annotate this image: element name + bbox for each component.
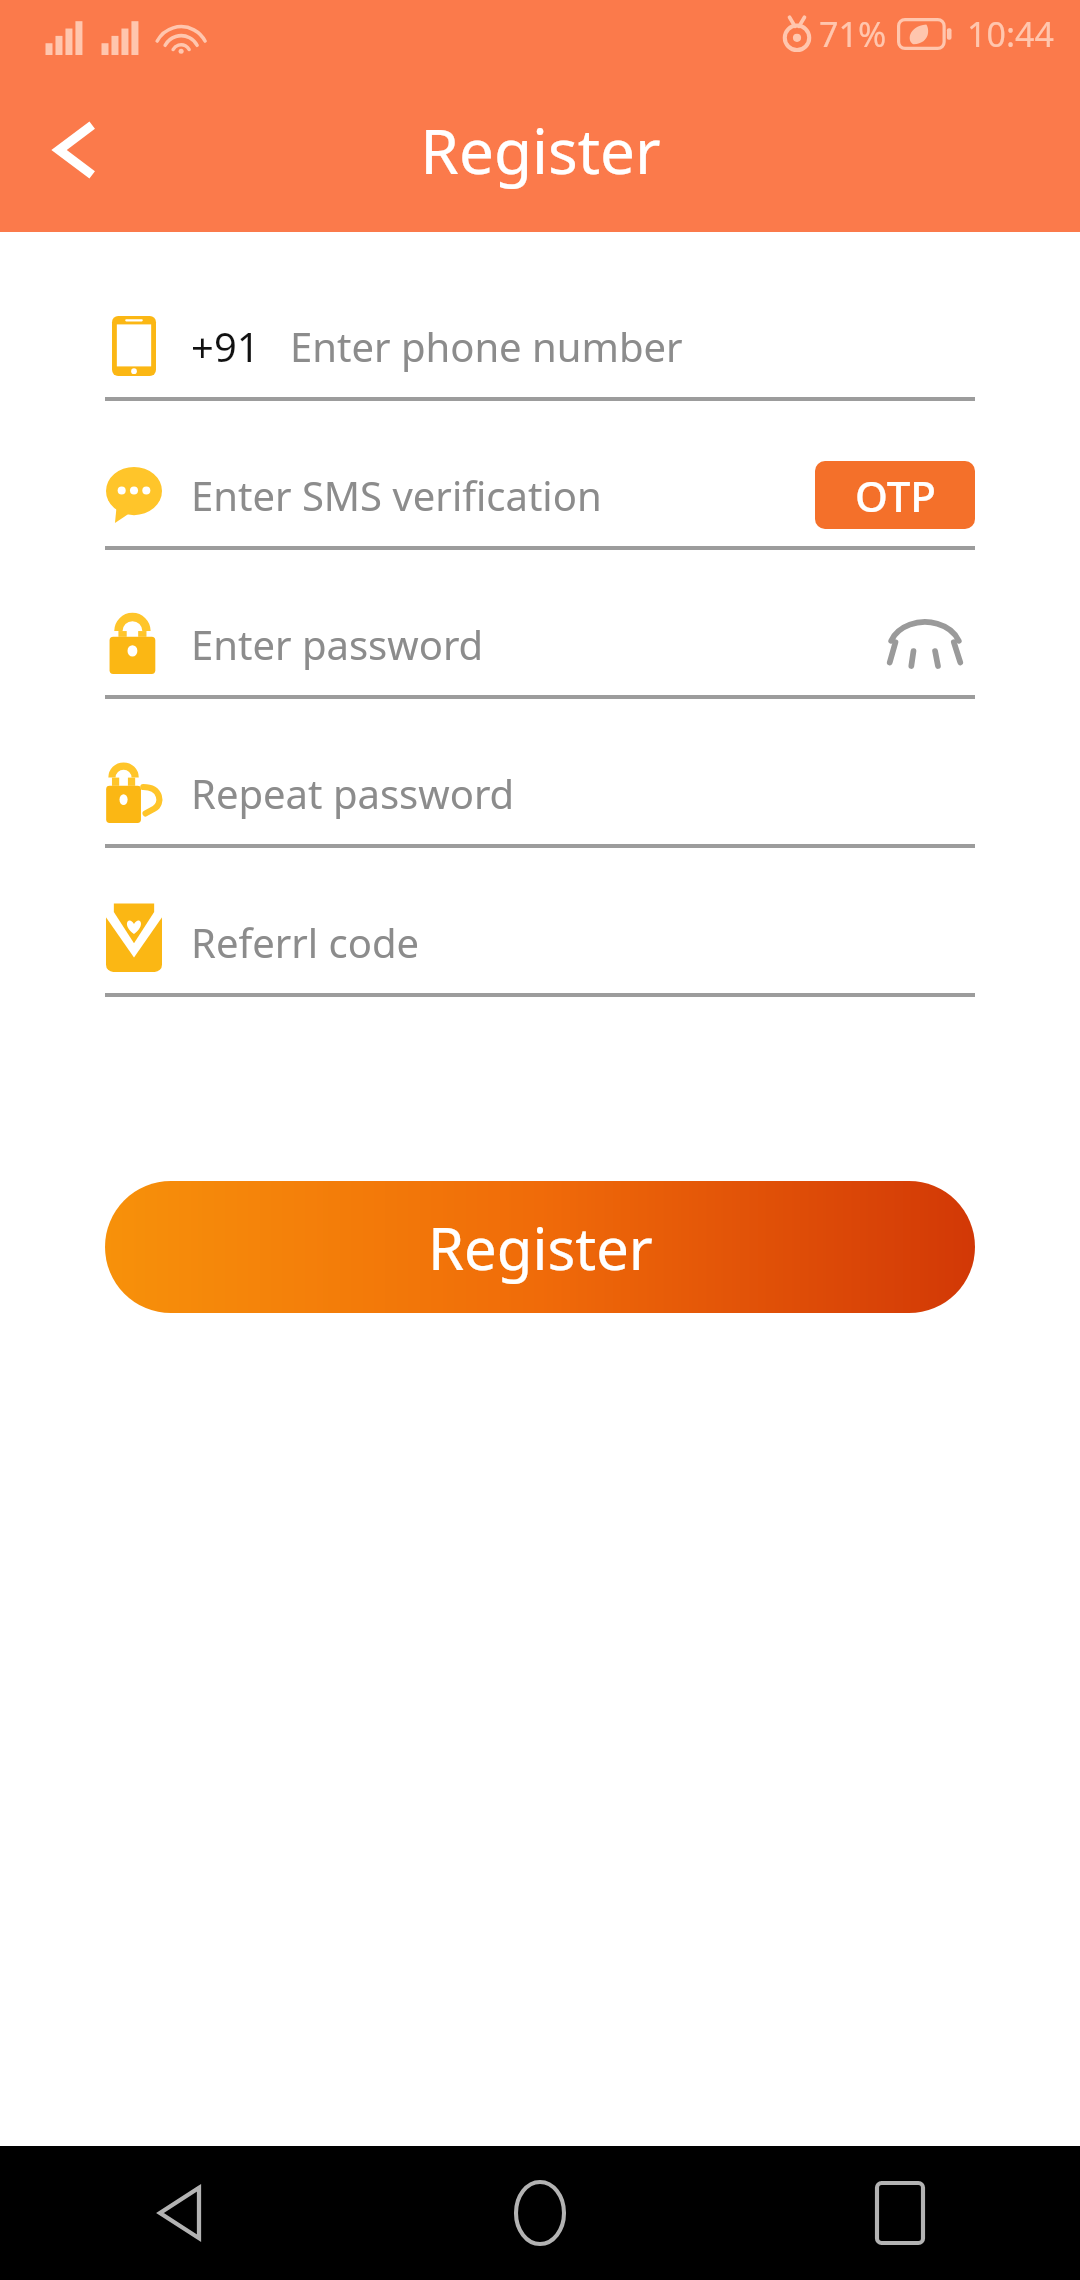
staticText: Enter password [191,617,484,671]
staticText: 71% [819,11,887,57]
button[interactable]: Recent apps [720,2146,1080,2280]
staticText: Enter SMS verification [191,468,602,522]
button[interactable]: +91 [105,294,975,443]
staticText: OTP [855,467,936,524]
staticText: Register [428,1208,653,1287]
staticText: +91 [191,319,260,373]
staticText: Register [420,108,661,192]
button[interactable]: Repeat password [105,741,975,890]
button[interactable]: Back [20,95,130,205]
button[interactable]: Show password [875,594,975,694]
button[interactable]: Back [0,2146,360,2280]
staticText: 10:44 [967,11,1054,57]
staticText: Enter phone number [290,319,683,373]
button[interactable]: Enter SMS verification [105,443,975,592]
staticText: Repeat password [191,766,515,820]
staticText: Referrl code [191,915,420,969]
button[interactable]: Home [360,2146,720,2280]
button[interactable]: Referrl code [105,890,975,1039]
button[interactable]: Register [105,1181,975,1313]
button[interactable]: OTP [815,461,975,529]
button[interactable]: Enter password [105,592,975,741]
